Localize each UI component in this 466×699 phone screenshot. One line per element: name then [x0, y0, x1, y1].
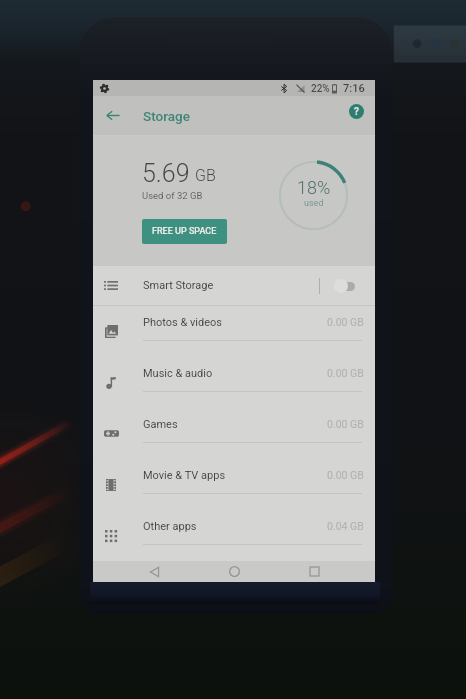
staticText: Storage [143, 108, 190, 124]
staticText: FREE UP SPACE [152, 226, 217, 237]
staticText: Movie & TV apps [143, 469, 226, 482]
button[interactable]: Movie & TV apps [93, 459, 375, 510]
staticText: Photos & videos [143, 316, 223, 329]
staticText: 0.00 GB [327, 367, 364, 379]
staticText: 7:16 [343, 82, 365, 95]
staticText: 22% [311, 83, 330, 95]
button[interactable]: Music & audio [93, 357, 375, 408]
staticText: 0.00 GB [327, 316, 364, 328]
button[interactable]: Recent apps [295, 561, 333, 582]
staticText: 0.04 GB [327, 520, 364, 532]
button[interactable]: Other apps [93, 510, 375, 561]
button[interactable]: Smart Storage [93, 266, 375, 305]
button[interactable]: Games [93, 408, 375, 459]
staticText: Smart Storage [143, 279, 214, 292]
staticText: ? [354, 106, 359, 118]
staticText: 0.00 GB [327, 418, 364, 430]
staticText: 18% [297, 177, 331, 198]
staticText: Other apps [143, 520, 197, 533]
button[interactable]: Help [349, 104, 364, 119]
button[interactable]: Navigate up [93, 96, 132, 135]
staticText: 0.00 GB [327, 469, 364, 481]
button[interactable]: Photos & videos [93, 306, 375, 357]
button[interactable]: FREE UP SPACE [142, 219, 227, 244]
staticText: Used of 32 GB [142, 190, 203, 201]
button[interactable]: Home [215, 561, 253, 582]
staticText: used [304, 198, 324, 209]
staticText: GB [195, 166, 216, 185]
button[interactable]: Back [135, 561, 173, 582]
staticText: Music & audio [143, 367, 213, 380]
staticText: 5.69 [142, 159, 190, 188]
staticText: Games [143, 418, 178, 431]
